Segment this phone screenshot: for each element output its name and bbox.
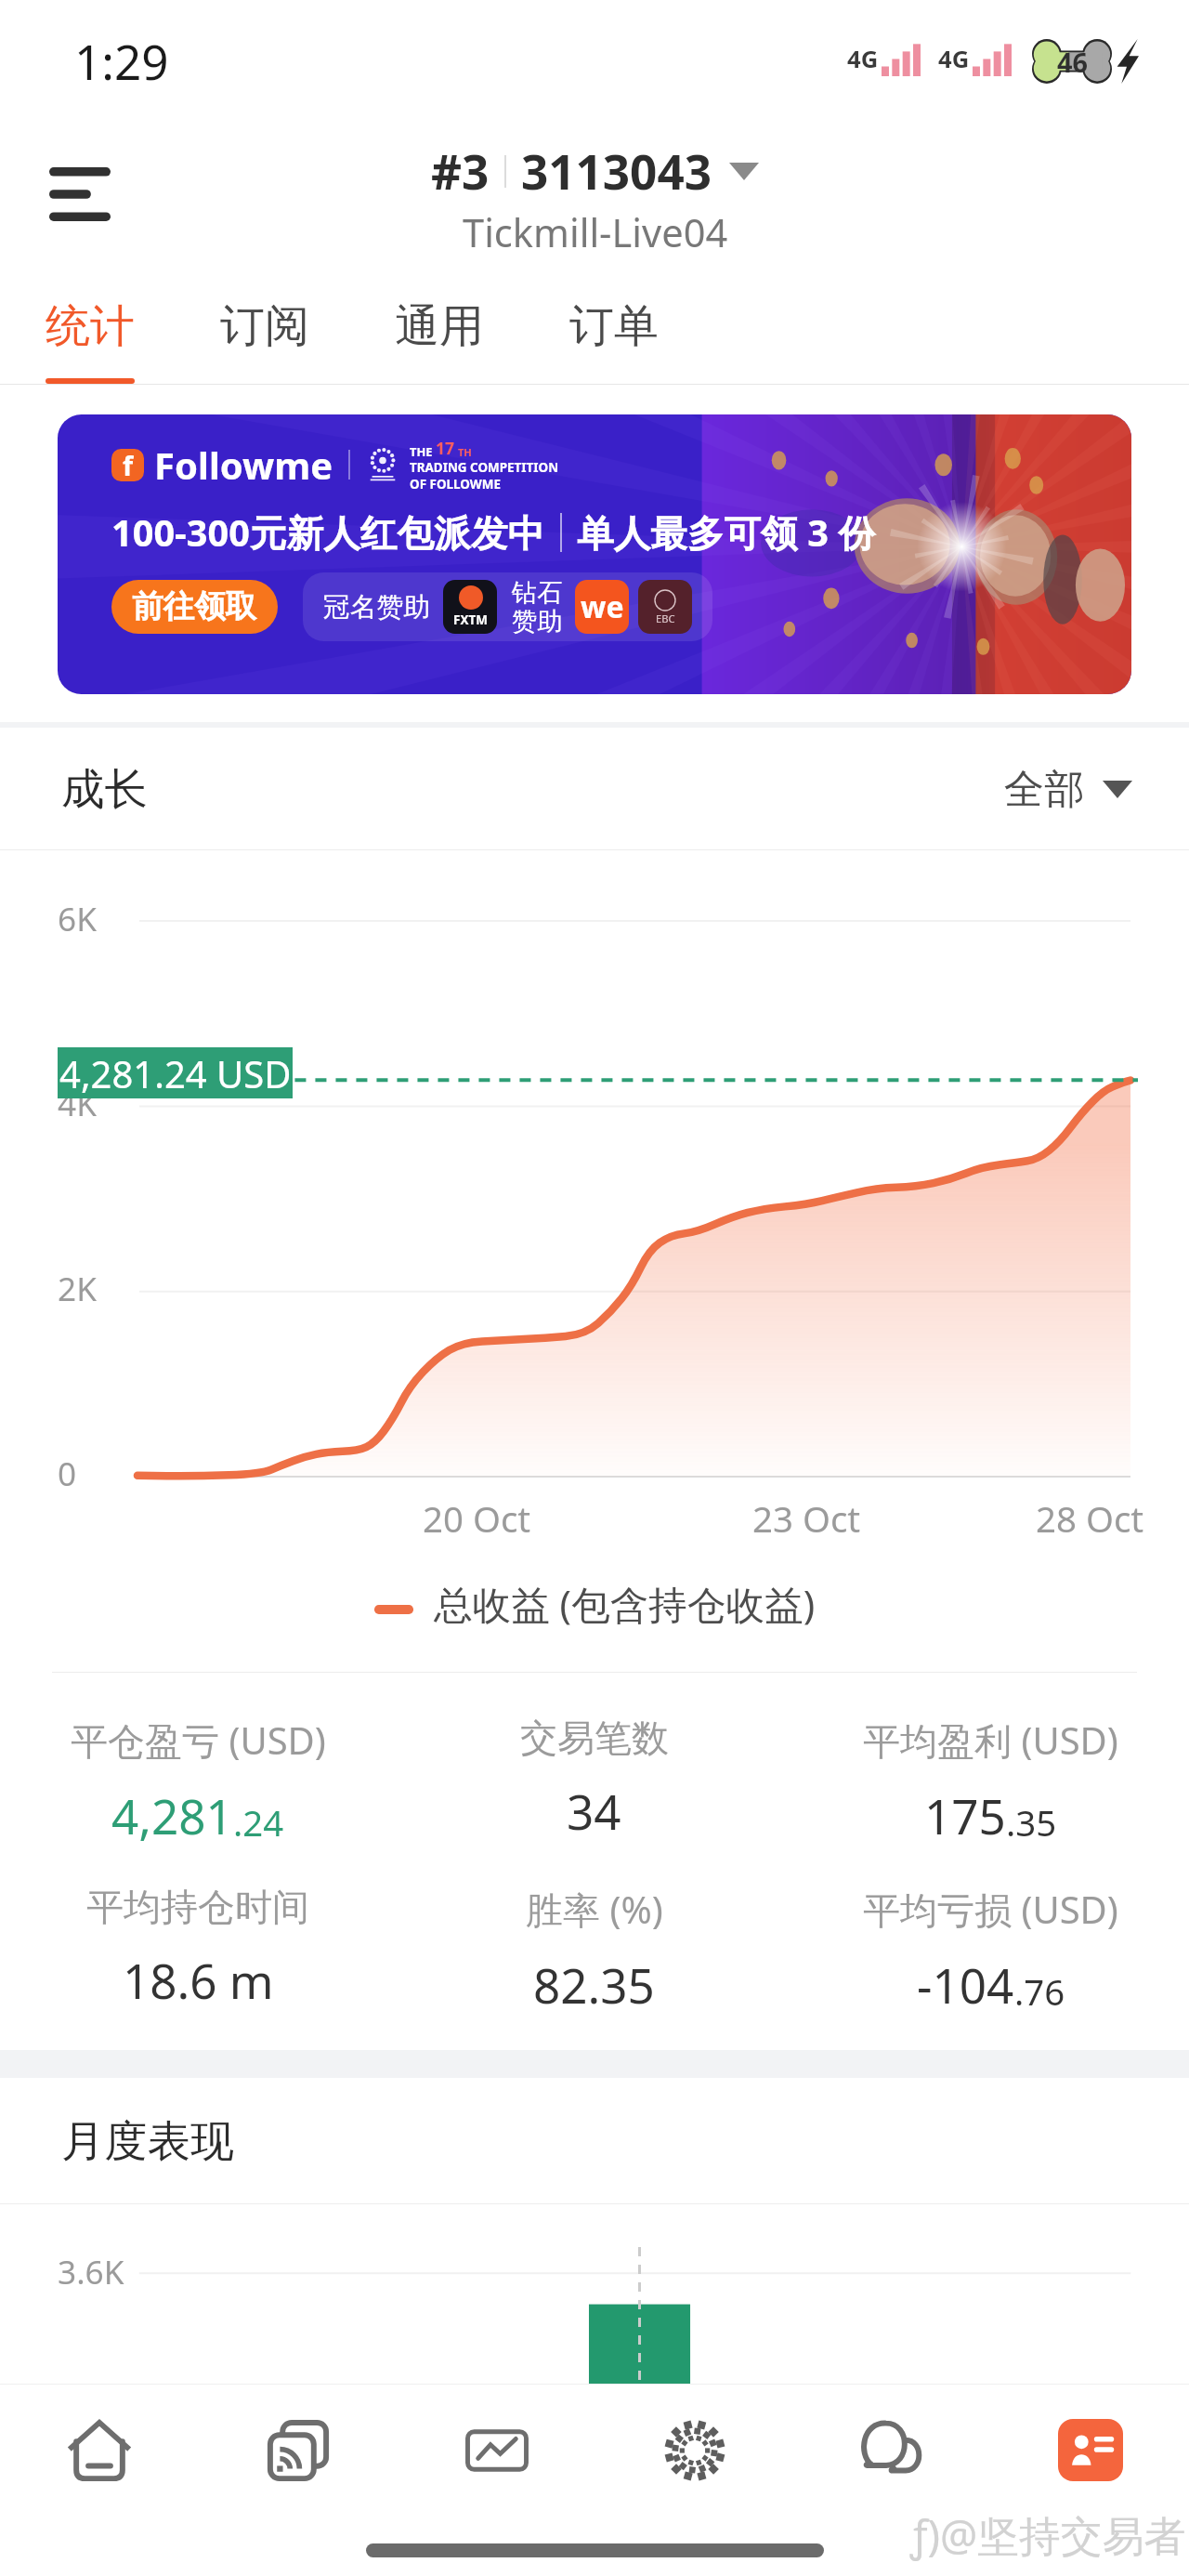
staticText: 3113043 (521, 138, 712, 204)
button[interactable]: Home (0, 2385, 199, 2516)
staticText: Followme (154, 440, 333, 490)
staticText: 4G (938, 43, 970, 75)
staticText: we (581, 586, 624, 627)
button[interactable]: 订阅 (177, 251, 352, 384)
staticText: 胜率 (%) (526, 1884, 663, 1935)
staticText: 23 Oct (752, 1494, 861, 1543)
button[interactable]: Discover (595, 2385, 793, 2516)
staticText: 前往领取 (132, 587, 257, 626)
staticText: .35 (1006, 1798, 1057, 1847)
staticText: 单人最多可领 3 份 (577, 507, 876, 558)
staticText: Tickmill-Live04 (463, 206, 728, 259)
button[interactable]: Menu (33, 147, 127, 242)
button[interactable]: Copy trading (199, 2385, 398, 2516)
staticText: 统计 (46, 298, 135, 354)
button[interactable]: 全部 (1004, 764, 1132, 814)
staticText: 2K (58, 1266, 97, 1310)
staticText: 平均盈利 (USD) (863, 1715, 1118, 1766)
button[interactable]: f (58, 414, 1131, 694)
staticText: 钻石 赞助 (512, 577, 563, 637)
staticText: 3.6K (58, 2249, 124, 2293)
staticText: 4,281.24 USD (59, 1048, 292, 1098)
staticText: 平均持仓时间 (86, 1884, 309, 1930)
staticText: 平仓盈亏 (USD) (71, 1715, 326, 1766)
staticText: 46 (1057, 44, 1088, 80)
staticText: .24 (233, 1798, 284, 1847)
staticText: 平均亏损 (USD) (863, 1884, 1118, 1935)
button[interactable]: 前往领取 (111, 580, 278, 634)
staticText: 4K (58, 1081, 97, 1125)
staticText: 月度表现 (61, 2114, 234, 2168)
staticText: 175 (924, 1783, 1006, 1848)
button[interactable]: 统计 (3, 251, 177, 384)
staticText: TH (455, 445, 472, 459)
button[interactable]: Charts (398, 2385, 595, 2516)
button[interactable]: 订单 (527, 251, 701, 384)
staticText: EBC (656, 611, 675, 625)
staticText: 通用 (395, 298, 484, 354)
staticText: TRADING COMPETITION (410, 459, 559, 476)
staticText: 34 (567, 1779, 621, 1844)
staticText: -104 (917, 1952, 1014, 2017)
staticText: THE (410, 443, 436, 459)
staticText: OF FOLLOWME (410, 476, 501, 493)
staticText: ƒ)@坚持交易者 (910, 2506, 1186, 2563)
staticText: 冠名赞助 (323, 590, 431, 624)
staticText: 交易笔数 (520, 1715, 669, 1761)
staticText: 4,281 (111, 1783, 233, 1848)
staticText: 28 Oct (1036, 1494, 1144, 1543)
staticText: 4G (847, 43, 879, 75)
staticText: 100-300元新人红包派发中 (111, 507, 545, 558)
staticText: 18.6 m (123, 1948, 274, 2013)
staticText: 全部 (1004, 764, 1085, 814)
button[interactable]: #3 (431, 138, 759, 259)
staticText: 6K (58, 896, 97, 940)
staticText: 总收益 (包含持仓收益) (434, 1578, 816, 1631)
button[interactable]: Profile (991, 2385, 1189, 2516)
staticText: 0 (58, 1451, 77, 1495)
staticText: 82.35 (533, 1952, 655, 2017)
staticText: f (123, 449, 134, 480)
button[interactable]: Messages (793, 2385, 991, 2516)
button[interactable]: 通用 (352, 251, 527, 384)
staticText: FXTM (453, 611, 488, 628)
staticText: 20 Oct (423, 1494, 531, 1543)
staticText: .76 (1014, 1967, 1065, 2016)
staticText: 成长 (61, 762, 148, 816)
staticText: 17 (436, 437, 455, 459)
staticText: #3 (431, 138, 490, 204)
staticText: 1:29 (74, 29, 169, 94)
staticText: 订单 (569, 298, 659, 354)
staticText: 订阅 (220, 298, 309, 354)
